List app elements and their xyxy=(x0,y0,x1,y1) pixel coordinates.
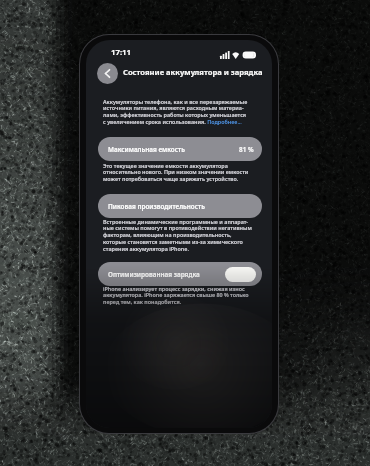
staticText: 17:11 xyxy=(111,47,132,58)
staticText: Максимальная емкость xyxy=(108,145,185,154)
staticText: Встроенные динамические программные и ап… xyxy=(103,218,252,253)
staticText: Пиковая производительность xyxy=(108,202,205,211)
staticText: iPhone анализирует процесс зарядки, сниж… xyxy=(103,285,249,306)
button[interactable]: Пиковая производительность xyxy=(98,194,262,218)
button[interactable]: Оптимизированная зарядка xyxy=(98,262,262,286)
staticText: Оптимизированная зарядка xyxy=(108,270,200,279)
staticText: 81 % xyxy=(239,145,254,154)
button[interactable]: Максимальная емкость xyxy=(98,137,262,161)
staticText: Аккумуляторы телефона, как и все перезар… xyxy=(103,98,248,126)
button[interactable]: Back xyxy=(97,63,118,84)
staticText: Это текущее значение емкости аккумулятор… xyxy=(103,162,249,183)
button[interactable]: Toggle optimized charging xyxy=(225,267,256,282)
staticText: Состояние аккумулятора и зарядка xyxy=(123,67,263,77)
